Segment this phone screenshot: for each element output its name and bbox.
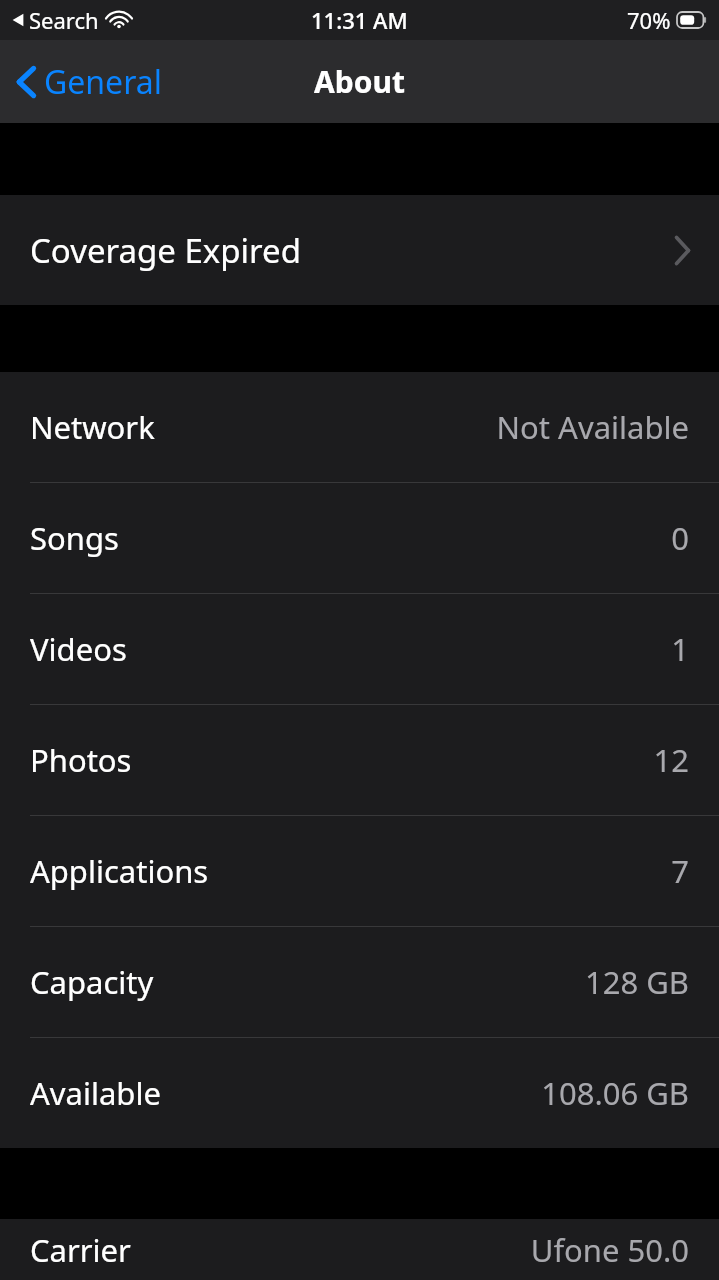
staticText: General (44, 60, 162, 104)
staticText: Carrier (30, 1229, 131, 1271)
button[interactable]: Capacity (0, 927, 719, 1037)
button[interactable]: Photos (0, 705, 719, 815)
staticText: Videos (30, 628, 127, 670)
staticText: Capacity (30, 961, 154, 1003)
staticText: Ufone 50.0 (530, 1229, 689, 1271)
staticText: 70% (627, 5, 671, 35)
staticText: 1 (671, 628, 689, 670)
staticText: Songs (30, 517, 119, 559)
button[interactable]: Network (0, 372, 719, 482)
staticText: Photos (30, 739, 132, 781)
button[interactable]: Applications (0, 816, 719, 926)
staticText: 128 GB (585, 961, 689, 1003)
staticText: 12 (653, 739, 689, 781)
other: Open coverage details (674, 235, 691, 266)
staticText: Search (29, 5, 99, 35)
button[interactable]: Songs (0, 483, 719, 593)
staticText: 0 (671, 517, 689, 559)
button[interactable]: Videos (0, 594, 719, 704)
staticText: About (314, 61, 405, 102)
staticText: 108.06 GB (541, 1072, 689, 1114)
staticText: Applications (30, 850, 209, 892)
button[interactable]: Available (0, 1038, 719, 1148)
button[interactable]: Carrier (0, 1219, 719, 1280)
staticText: Available (30, 1072, 161, 1114)
staticText: Network (30, 406, 155, 448)
staticText: 7 (671, 850, 689, 892)
button[interactable]: General (0, 54, 174, 110)
staticText: Coverage Expired (30, 228, 301, 273)
staticText: Not Available (496, 406, 689, 448)
button[interactable]: Coverage Expired (0, 195, 719, 305)
staticText: 11:31 AM (311, 5, 408, 35)
